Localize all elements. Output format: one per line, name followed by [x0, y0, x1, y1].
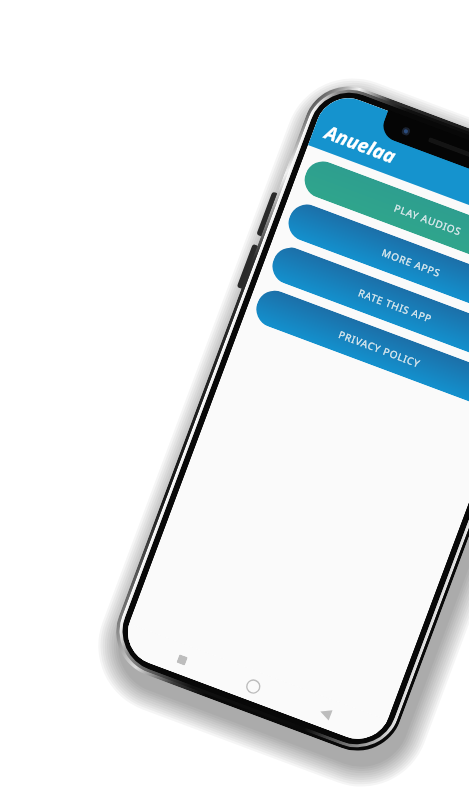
button[interactable]: MORE APPS: [283, 199, 469, 325]
button[interactable]: Home: [234, 667, 272, 705]
button[interactable]: Back: [306, 694, 344, 732]
button[interactable]: PLAY AUDIOS: [299, 156, 469, 282]
staticText: PRIVACY POLICY: [336, 327, 423, 371]
staticText: :38 PM: [390, 118, 426, 142]
button[interactable]: PRIVACY POLICY: [251, 285, 469, 411]
button[interactable]: RATE THIS APP: [267, 242, 469, 368]
staticText: MORE APPS: [380, 245, 443, 280]
staticText: PLAY AUDIOS: [392, 201, 464, 239]
staticText: Anuelaa: [321, 119, 400, 169]
button[interactable]: Recent apps: [162, 640, 201, 679]
staticText: RATE THIS APP: [356, 285, 434, 326]
